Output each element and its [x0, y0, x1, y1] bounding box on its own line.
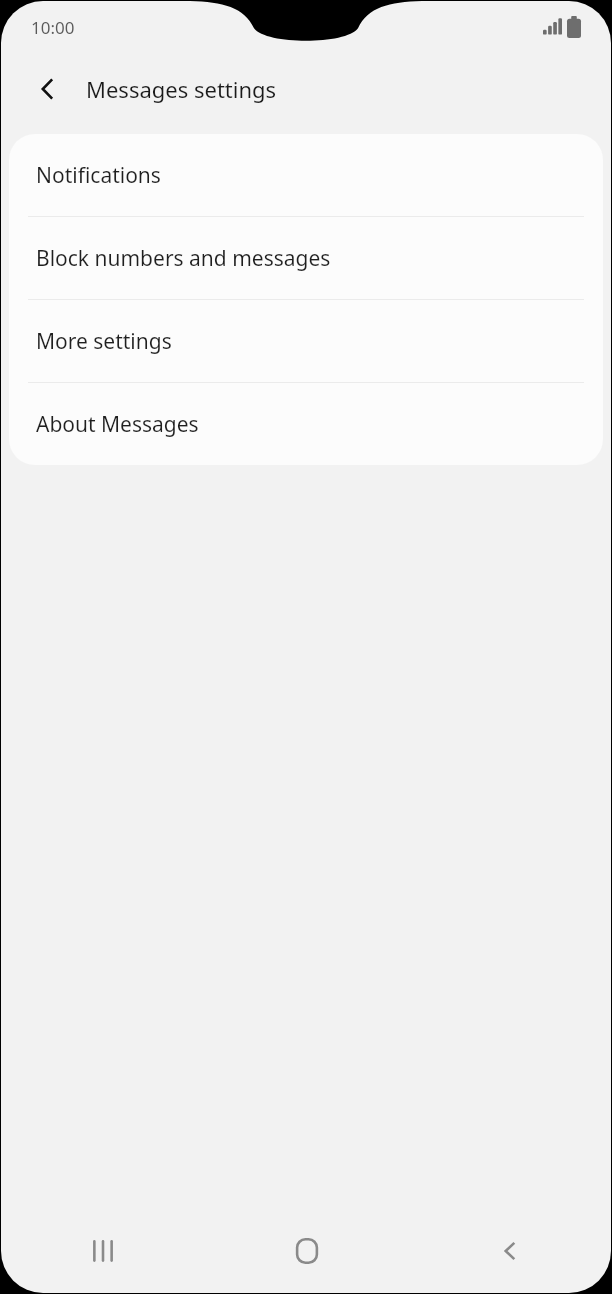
staticText: 10:00	[31, 16, 75, 39]
button[interactable]: Back	[23, 64, 73, 114]
staticText: Notifications	[36, 161, 161, 190]
button[interactable]: Notifications	[9, 134, 603, 216]
staticText: Messages settings	[86, 74, 277, 104]
button[interactable]: Block numbers and messages	[9, 217, 603, 299]
staticText: Block numbers and messages	[36, 244, 331, 273]
staticText: More settings	[36, 327, 172, 356]
button[interactable]: Home	[205, 1209, 408, 1293]
button[interactable]: Recent apps	[1, 1209, 205, 1293]
button[interactable]: More settings	[9, 300, 603, 382]
button[interactable]: About Messages	[9, 383, 603, 465]
staticText: About Messages	[36, 410, 199, 439]
button[interactable]: Back	[408, 1209, 611, 1293]
